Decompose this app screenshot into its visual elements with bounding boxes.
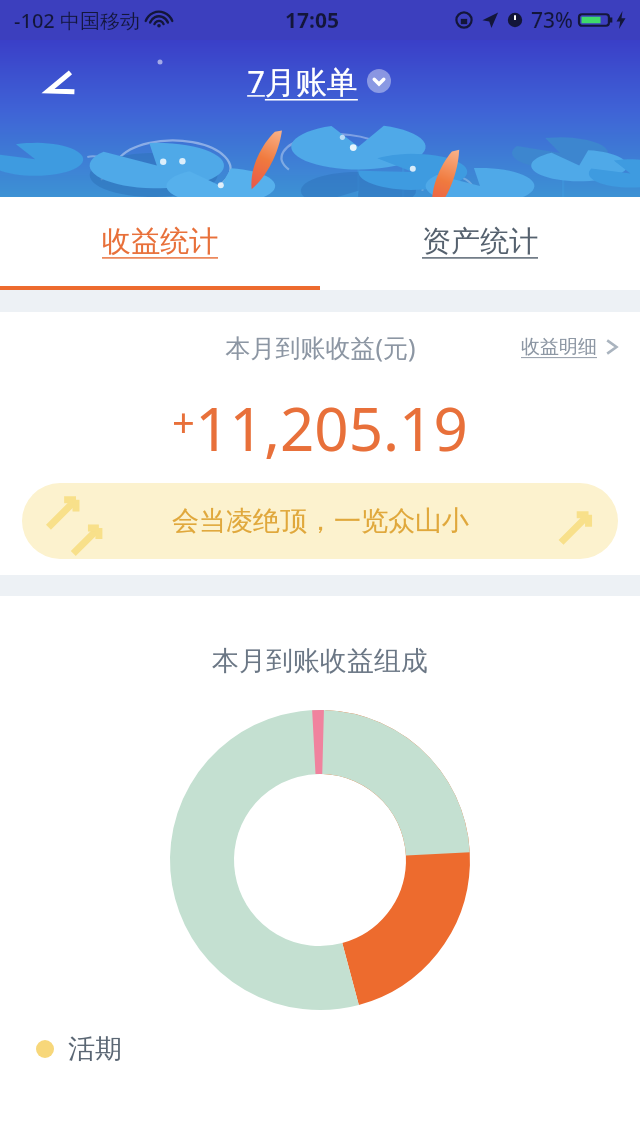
button[interactable]: 7月账单 [247,60,394,102]
staticText: 活期 [68,1032,122,1066]
button[interactable]: 收益统计 [0,197,320,286]
staticText: 资产统计 [422,223,538,260]
staticText: -102 中国移动 [14,7,140,34]
button[interactable]: 会当凌绝顶，一览众山小 [22,483,618,559]
staticText: 17:05 [285,6,339,35]
button[interactable]: Back [28,58,90,120]
staticText: 本月到账收益组成 [212,644,428,678]
staticText: + [172,394,195,448]
staticText: 收益统计 [102,223,218,260]
staticText: 7月账单 [247,60,358,102]
staticText: 11,205.19 [195,387,468,469]
button[interactable]: 活期 [36,1032,640,1066]
staticText: 收益明细 [521,335,597,359]
button[interactable]: 资产统计 [320,197,640,286]
staticText: 本月到账收益(元) [225,330,416,364]
staticText: 73% [531,6,573,35]
staticText: 会当凌绝顶，一览众山小 [172,504,469,538]
button[interactable]: 收益明细 [521,335,620,359]
